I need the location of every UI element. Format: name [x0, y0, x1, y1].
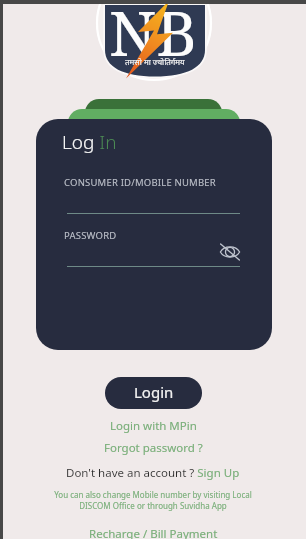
staticText: PASSWORD [64, 229, 117, 242]
button[interactable]: Recharge / Bill Payment [0, 525, 306, 539]
staticText: Login [134, 382, 174, 402]
button[interactable]: Show password [217, 239, 243, 265]
button[interactable]: Forgot password ? [0, 439, 306, 456]
staticText: Login with MPin [110, 418, 197, 434]
staticText: Recharge / Bill Payment [89, 526, 218, 539]
staticText: Log In [62, 129, 117, 155]
button[interactable]: Login [105, 377, 202, 409]
staticText: Don't have an account ? Sign Up [66, 465, 240, 481]
staticText: NB [109, 0, 197, 62]
staticText: तमसो मा ज्योतिर्गमय [125, 56, 185, 67]
staticText: You can also change Mobile number by vis… [40, 489, 266, 512]
button[interactable]: Login with MPin [0, 417, 306, 434]
staticText: CONSUMER ID/MOBILE NUMBER [64, 176, 216, 189]
staticText: Forgot password ? [104, 440, 203, 456]
